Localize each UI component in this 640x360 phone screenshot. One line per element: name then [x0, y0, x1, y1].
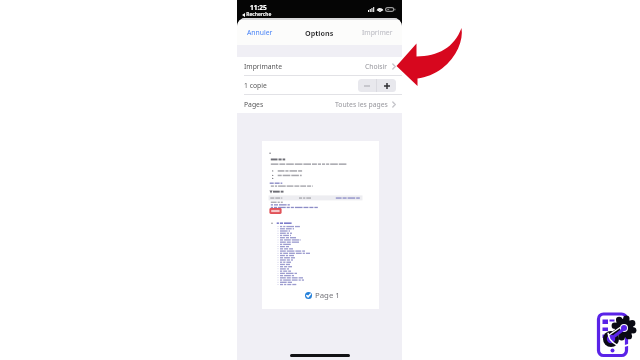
staticText: Annuler — [247, 28, 273, 37]
staticText: Toutes les pages — [335, 100, 388, 109]
staticText: Imprimante — [244, 62, 283, 71]
staticText: Pages — [244, 100, 264, 109]
button[interactable]: Imprimer — [355, 23, 402, 42]
staticText: Imprimer — [362, 28, 393, 37]
button[interactable]: Annuler — [237, 23, 280, 42]
staticText: 1 copie — [244, 81, 267, 90]
staticText: Page 1 — [315, 290, 340, 301]
staticText: 11:25 — [250, 3, 267, 12]
button[interactable]: 1 copie — [237, 76, 402, 94]
staticText: Recherche — [245, 11, 272, 18]
button[interactable]: App logo — [596, 311, 640, 355]
button[interactable]: Decrease copies — [358, 79, 376, 92]
button[interactable]: Pages — [237, 95, 402, 113]
button[interactable]: Increase copies — [377, 79, 396, 92]
staticText: Options — [305, 28, 334, 38]
staticText: Choisir — [365, 62, 388, 71]
button[interactable]: Imprimante — [237, 57, 402, 75]
